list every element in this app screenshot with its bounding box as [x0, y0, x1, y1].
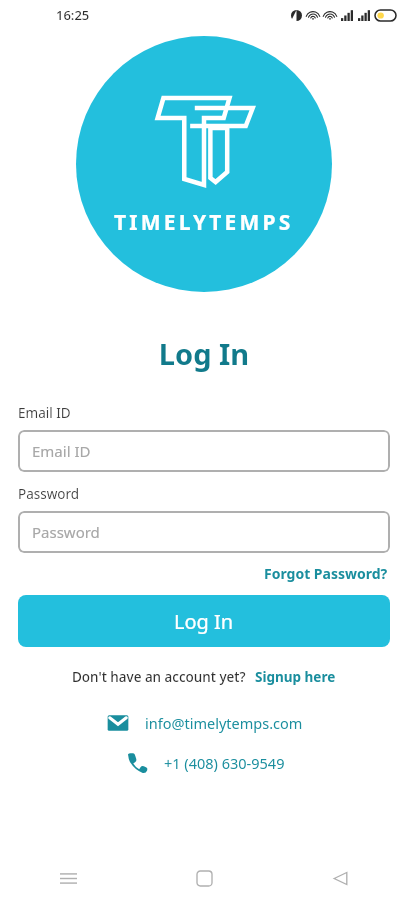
staticText: info@timelytemps.com	[145, 713, 303, 733]
staticText: Email ID	[18, 404, 71, 422]
staticText: Log In	[0, 334, 408, 373]
other: Email us	[105, 710, 131, 736]
staticText: Forgot Password?	[264, 564, 388, 583]
other: Call us	[124, 750, 150, 776]
staticText: +1 (408) 630-9549	[164, 753, 285, 773]
button[interactable]: Recent apps	[0, 856, 136, 900]
button[interactable]: Home	[136, 856, 272, 900]
button[interactable]: Email us	[0, 710, 408, 736]
button[interactable]: Back	[272, 856, 408, 900]
button[interactable]: Password	[18, 511, 390, 553]
button[interactable]: Call us	[0, 750, 408, 776]
staticText: 16:25	[56, 6, 90, 24]
staticText: TIMELYTEMPS	[114, 208, 294, 237]
button[interactable]: Signup here	[255, 666, 336, 688]
button[interactable]: Forgot Password?	[262, 561, 390, 586]
staticText: Password	[32, 522, 100, 542]
button[interactable]: Log In	[18, 595, 390, 647]
staticText: Signup here	[255, 668, 336, 686]
staticText: Email ID	[32, 441, 91, 461]
staticText: Don't have an account yet?	[72, 668, 246, 686]
button[interactable]: Email ID	[18, 430, 390, 472]
staticText: Log In	[174, 608, 234, 635]
staticText: Password	[18, 485, 80, 503]
